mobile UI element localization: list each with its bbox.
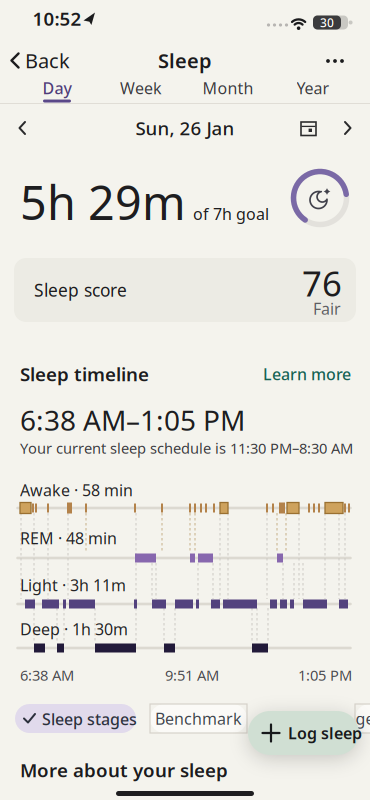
staticText: 9:51 AM [165,665,219,685]
staticText: More about your sleep [20,758,228,782]
staticText: Sleep score [34,278,127,301]
staticText: Deep · 1h 30m [20,618,128,640]
staticText: 30 [320,14,334,30]
staticText: Back [25,47,70,74]
staticText: 76 [302,260,342,306]
staticText: 1:05 PM [298,665,352,685]
staticText: Your current sleep schedule is 11:30 PM–… [20,438,353,458]
staticText: Month [202,77,253,99]
staticText: Log sleep [288,722,362,744]
staticText: Light · 3h 11m [20,574,126,596]
staticText: 10:52 [32,6,81,31]
staticText: Sleep [158,47,212,74]
staticText: Sleep stages [42,708,137,730]
staticText: Fair [313,298,341,319]
staticText: 6:38 AM [20,665,74,685]
staticText: Day [42,77,71,99]
staticText: 5h 29m [20,171,186,233]
staticText: ge [355,708,370,729]
staticText: Year [296,77,329,99]
staticText: 6:38 AM–1:05 PM [20,401,245,439]
staticText: Learn more [263,363,351,385]
staticText: Sun, 26 Jan [135,116,234,140]
staticText: Benchmark [155,708,242,729]
staticText: Awake · 58 min [20,479,133,501]
staticText: of 7h goal [193,203,269,224]
staticText: REM · 48 min [20,527,117,549]
staticText: Week [120,77,162,99]
staticText: Sleep timeline [20,362,149,386]
